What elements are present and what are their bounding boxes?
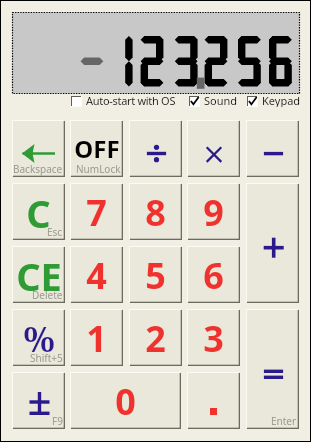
staticText: F9 [52, 414, 63, 428]
button[interactable]: 4 [70, 246, 123, 303]
staticText: Shift+5 [30, 351, 63, 365]
button[interactable]: Plus minus [12, 372, 65, 429]
staticText: 5 [145, 251, 166, 300]
staticText: Delete [32, 288, 63, 302]
button[interactable]: % [12, 309, 65, 366]
staticText: % [23, 315, 55, 363]
button[interactable]: Minus [246, 120, 299, 177]
button[interactable]: 7 [70, 183, 123, 240]
button[interactable]: 2 [129, 309, 182, 366]
staticText: Keypad [262, 93, 301, 107]
button[interactable]: Auto-start with OS [71, 93, 161, 107]
staticText: 8 [145, 188, 166, 237]
button[interactable]: 3 [187, 309, 240, 366]
staticText: Auto-start with OS [86, 93, 176, 107]
button[interactable]: Backspace [12, 120, 65, 177]
staticText: NumLock [76, 162, 121, 176]
staticText: Backspace [13, 162, 63, 176]
staticText: 7 [86, 188, 107, 237]
button[interactable]: Divide [129, 120, 182, 177]
staticText: C [26, 187, 51, 239]
button[interactable]: Keypad [247, 93, 286, 107]
button[interactable]: 5 [129, 246, 182, 303]
button[interactable]: Multiply [187, 120, 240, 177]
staticText: Enter [271, 414, 297, 428]
button[interactable]: Decimal point [187, 372, 240, 429]
staticText: 1 [86, 314, 107, 363]
staticText: Esc [47, 225, 63, 239]
staticText: 4 [86, 251, 107, 300]
button[interactable]: 0 [70, 372, 181, 429]
button[interactable]: Equals [246, 309, 299, 429]
staticText: 3 [203, 314, 224, 363]
button[interactable]: Plus [246, 183, 299, 303]
button[interactable]: Sound [189, 93, 223, 107]
staticText: 6 [203, 251, 224, 300]
button[interactable]: CE [12, 246, 65, 303]
button[interactable]: 1 [70, 309, 123, 366]
button[interactable]: 8 [129, 183, 182, 240]
staticText: 2 [145, 314, 166, 363]
button[interactable]: 6 [187, 246, 240, 303]
staticText: 9 [203, 188, 224, 237]
staticText: Sound [204, 93, 238, 107]
button[interactable]: C [12, 183, 65, 240]
staticText: OFF [74, 132, 120, 165]
button[interactable]: OFF [70, 120, 123, 177]
staticText: 0 [115, 377, 136, 426]
button[interactable]: 9 [187, 183, 240, 240]
staticText: CE [16, 250, 62, 302]
